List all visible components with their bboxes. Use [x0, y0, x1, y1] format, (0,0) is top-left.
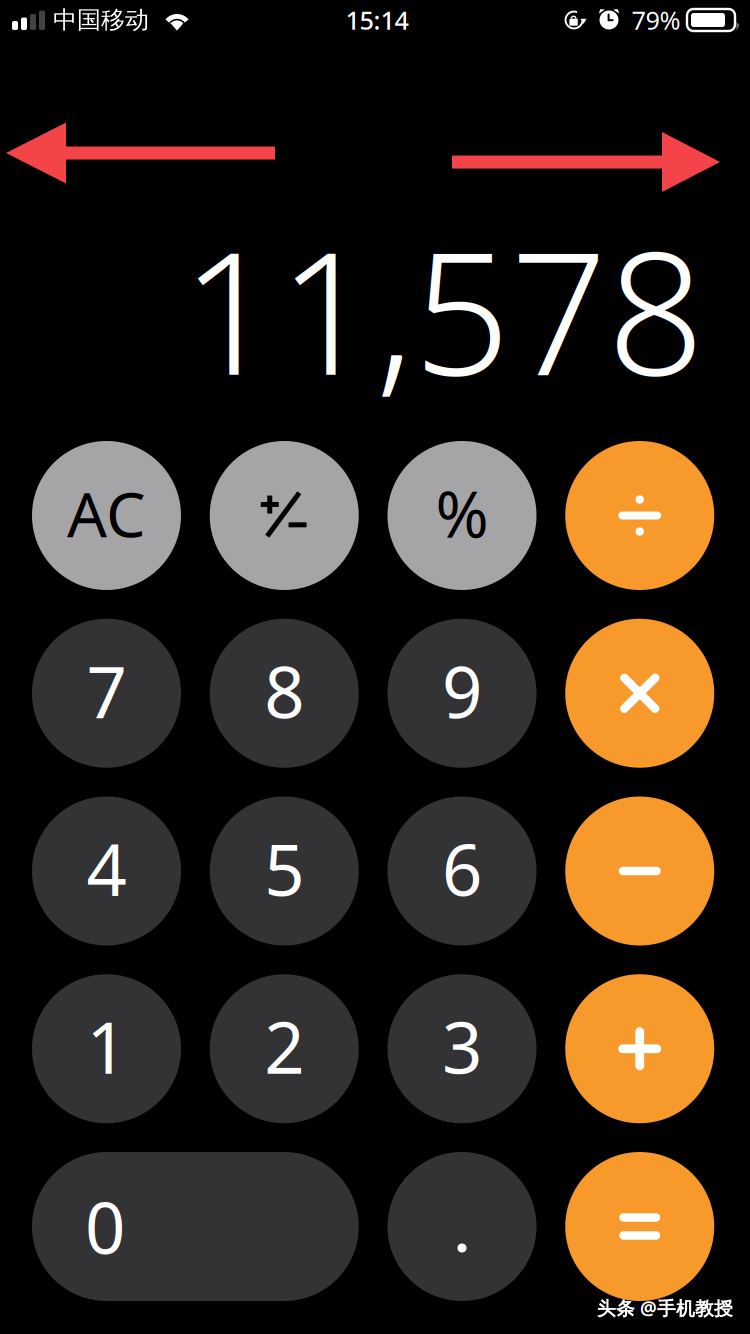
staticText: 15:14	[345, 3, 408, 37]
button[interactable]: Minus	[565, 796, 714, 945]
button[interactable]: %	[387, 441, 536, 590]
staticText: 2	[264, 999, 304, 1093]
button[interactable]: Equals	[565, 1152, 714, 1301]
staticText: 3	[442, 999, 482, 1093]
button[interactable]: Divide	[565, 441, 714, 590]
button[interactable]: 4	[32, 796, 181, 945]
staticText: 头条 @手机教授	[597, 1296, 733, 1320]
button[interactable]: 7	[32, 619, 181, 768]
staticText: AC	[67, 471, 146, 555]
button[interactable]: 0	[32, 1152, 359, 1301]
button[interactable]: 9	[387, 619, 536, 768]
staticText: %	[435, 470, 488, 555]
staticText: 0	[85, 1180, 125, 1273]
button[interactable]: AC	[32, 441, 181, 590]
staticText: 11,578	[181, 197, 704, 421]
button[interactable]: Decimal point	[387, 1152, 536, 1301]
staticText: 79%	[631, 3, 680, 37]
button[interactable]: Plus minus	[210, 441, 359, 590]
button[interactable]: Plus	[565, 974, 714, 1123]
staticText: 4	[86, 822, 126, 915]
staticText: 7	[86, 644, 126, 738]
button[interactable]: 5	[210, 796, 359, 945]
button[interactable]: Multiply	[565, 619, 714, 768]
staticText: 6	[442, 822, 482, 915]
button[interactable]: 8	[210, 619, 359, 768]
button[interactable]: 1	[32, 974, 181, 1123]
staticText: 1	[86, 999, 126, 1093]
staticText: 5	[264, 822, 304, 915]
button[interactable]: 2	[210, 974, 359, 1123]
staticText: 9	[442, 644, 482, 738]
button[interactable]: 6	[387, 796, 536, 945]
staticText: 中国移动	[53, 5, 149, 35]
button[interactable]: 3	[387, 974, 536, 1123]
staticText: 8	[264, 644, 304, 738]
